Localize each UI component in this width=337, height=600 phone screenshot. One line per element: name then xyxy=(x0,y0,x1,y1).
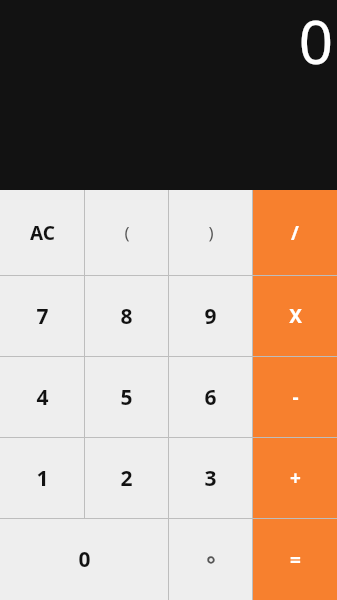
button[interactable]: 8 xyxy=(85,276,168,356)
button[interactable]: 3 xyxy=(169,438,252,518)
staticText: 7 xyxy=(36,302,49,331)
staticText: 9 xyxy=(204,302,217,331)
button[interactable]: 6 xyxy=(169,357,252,437)
staticText: AC xyxy=(30,220,55,246)
button[interactable]: 7 xyxy=(0,276,84,356)
button[interactable]: ( xyxy=(85,190,168,275)
staticText: + xyxy=(290,465,301,491)
staticText: 8 xyxy=(120,302,133,331)
button[interactable]: 4 xyxy=(0,357,84,437)
button[interactable]: / xyxy=(253,190,337,275)
button[interactable]: 2 xyxy=(85,438,168,518)
staticText: 6 xyxy=(204,383,217,412)
staticText: 4 xyxy=(36,383,49,412)
button[interactable]: 5 xyxy=(85,357,168,437)
staticText: 0 xyxy=(298,0,333,82)
button[interactable]: 9 xyxy=(169,276,252,356)
staticText: 3 xyxy=(204,464,217,493)
button[interactable]: AC xyxy=(0,190,84,275)
staticText: ( xyxy=(124,221,130,244)
button[interactable]: ) xyxy=(169,190,252,275)
button[interactable]: - xyxy=(253,357,337,437)
staticText: X xyxy=(289,303,302,329)
staticText: / xyxy=(291,220,299,246)
button[interactable]: 0 xyxy=(0,519,168,600)
staticText: 1 xyxy=(36,464,49,493)
staticText: 2 xyxy=(120,464,133,493)
button[interactable]: X xyxy=(253,276,337,356)
button[interactable]: 1 xyxy=(0,438,84,518)
button[interactable]: = xyxy=(253,519,337,600)
staticText: = xyxy=(290,547,301,573)
button[interactable]: + xyxy=(253,438,337,518)
staticText: 0 xyxy=(78,545,91,574)
staticText: 5 xyxy=(120,383,133,412)
staticText: ) xyxy=(208,221,214,244)
staticText: - xyxy=(292,384,299,410)
button[interactable]: Decimal point xyxy=(169,519,252,600)
